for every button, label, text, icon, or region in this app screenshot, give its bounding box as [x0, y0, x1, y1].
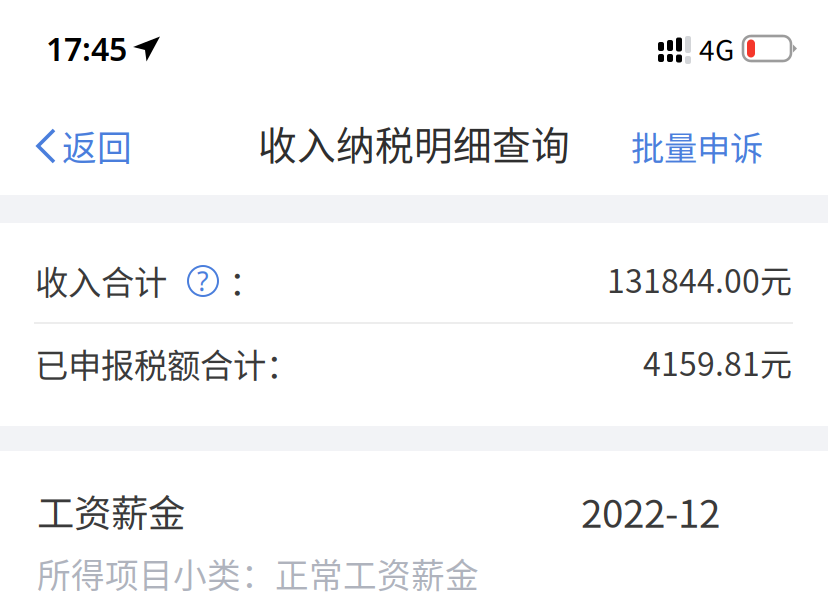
staticText: 4159.81元 [643, 339, 792, 385]
staticText: 17:45 [46, 27, 127, 70]
staticText: ? [197, 263, 209, 299]
button[interactable]: 返回 [24, 109, 144, 183]
staticText: 4G [699, 28, 734, 69]
staticText: 131844.00元 [607, 256, 792, 302]
staticText: 已申报税额合计： [35, 339, 299, 387]
button[interactable]: 批量申诉 [619, 110, 775, 182]
staticText: ： [229, 256, 262, 304]
button[interactable]: 工资薪金 [0, 451, 828, 598]
staticText: 工资薪金 [37, 484, 185, 538]
staticText: 返回 [62, 121, 132, 171]
staticText: 收入合计 [35, 256, 167, 304]
staticText: 所得项目小类：正常工资薪金 [37, 549, 479, 598]
staticText: 2022-12 [581, 483, 720, 539]
staticText: 批量申诉 [631, 122, 763, 170]
button[interactable]: 收入合计说明 [188, 266, 218, 296]
staticText: 收入纳税明细查询 [258, 115, 570, 171]
